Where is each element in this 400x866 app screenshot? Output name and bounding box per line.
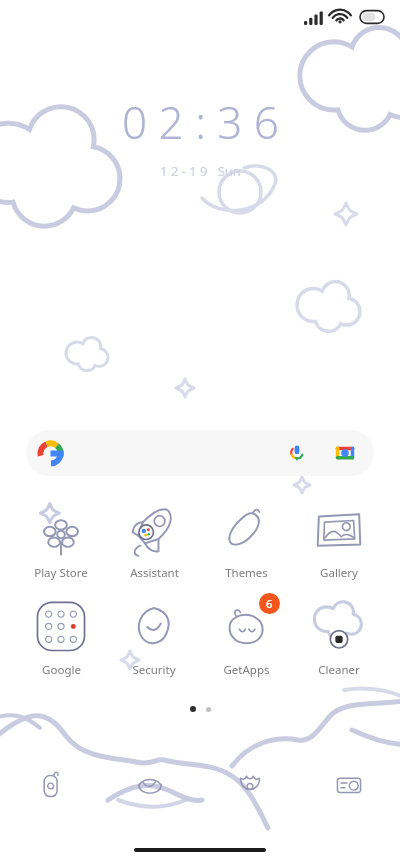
- button[interactable]: Cleaner: [298, 599, 380, 678]
- staticText: Google: [42, 662, 81, 678]
- button[interactable]: Browser: [221, 756, 279, 814]
- staticText: Gallery: [320, 565, 358, 581]
- staticText: 1 2 - 1 9 Sun: [160, 162, 241, 180]
- button[interactable]: Play Store: [20, 502, 102, 581]
- staticText: Play Store: [34, 565, 88, 581]
- button[interactable]: 0 2 : 3 6: [0, 92, 400, 180]
- staticText: GetApps: [223, 662, 270, 678]
- staticText: Cleaner: [318, 662, 360, 678]
- button[interactable]: Settings: [320, 756, 378, 814]
- button[interactable]: Google Lens: [334, 442, 356, 464]
- staticText: 6: [266, 596, 273, 611]
- button[interactable]: Voice search: [286, 442, 308, 464]
- button[interactable]: Gallery: [298, 502, 380, 581]
- button[interactable]: Assistant: [113, 502, 195, 581]
- button[interactable]: Google search: [26, 430, 374, 476]
- button[interactable]: Phone: [22, 756, 80, 814]
- button[interactable]: GetApps: [205, 599, 287, 678]
- staticText: 0 2 : 3 6: [122, 92, 279, 152]
- staticText: Themes: [225, 565, 268, 581]
- button[interactable]: Google: [20, 599, 102, 678]
- button[interactable]: Security: [113, 599, 195, 678]
- staticText: Security: [132, 662, 176, 678]
- button[interactable]: Themes: [205, 502, 287, 581]
- staticText: Assistant: [130, 565, 179, 581]
- button[interactable]: Messages: [121, 756, 179, 814]
